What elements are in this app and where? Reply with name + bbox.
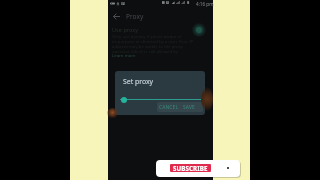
button[interactable]: Learn more [112, 52, 136, 58]
button[interactable]: CANCEL [159, 103, 181, 111]
staticText: Only use a proxy if you're aware of its … [112, 33, 194, 54]
button[interactable]: Back [110, 10, 122, 22]
staticText: SAVE [183, 104, 195, 111]
staticText: SUBSCRIBE [173, 164, 208, 172]
staticText: 4:16 pm [196, 1, 214, 7]
staticText: CANCEL [159, 104, 179, 111]
button[interactable]: Use proxy toggle [191, 22, 207, 38]
staticText: Use proxy [112, 26, 139, 34]
button[interactable]: SAVE [183, 103, 199, 111]
button[interactable]: SUBSCRIBE [170, 164, 211, 172]
button[interactable]: Use proxy [108, 24, 213, 60]
staticText: Set proxy [123, 77, 154, 86]
staticText: Proxy [126, 12, 144, 21]
